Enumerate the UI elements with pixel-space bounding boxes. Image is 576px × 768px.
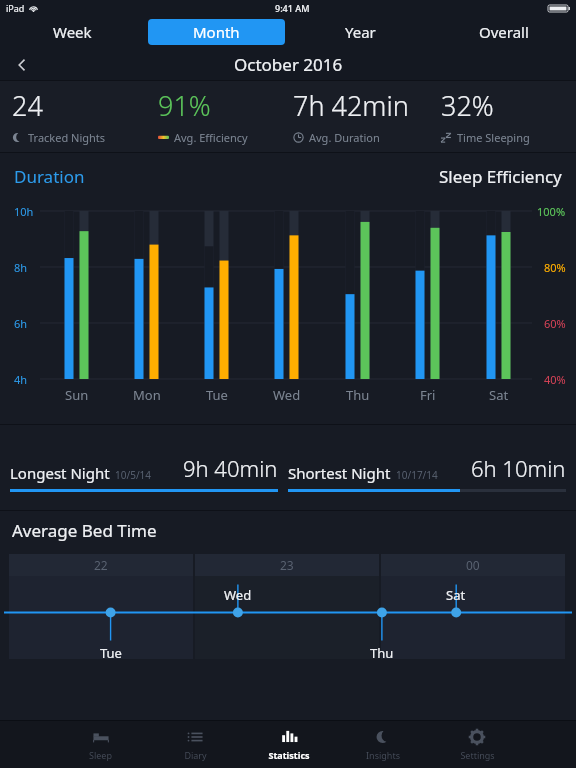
staticText: 00: [466, 557, 480, 573]
staticText: 10/5/14: [115, 468, 152, 482]
button[interactable]: 32%: [441, 87, 576, 153]
button[interactable]: 91%: [158, 87, 293, 153]
button[interactable]: Shortest Night: [288, 453, 566, 492]
staticText: 8h: [14, 260, 28, 275]
staticText: Diary: [184, 749, 207, 761]
staticText: Sun: [65, 386, 89, 404]
staticText: Wed: [224, 586, 252, 604]
staticText: Time Sleeping: [457, 130, 530, 145]
staticText: Longest Night: [10, 463, 110, 483]
staticText: Duration: [14, 165, 85, 188]
staticText: 100%: [537, 204, 566, 219]
staticText: Avg. Duration: [309, 130, 380, 145]
staticText: 22: [94, 557, 108, 573]
button[interactable]: Diary: [148, 721, 242, 768]
staticText: Tue: [206, 386, 228, 404]
staticText: Month: [193, 22, 240, 42]
staticText: Tracked Nights: [28, 130, 106, 145]
staticText: Overall: [479, 22, 529, 42]
button[interactable]: Longest Night: [10, 453, 278, 492]
staticText: 10h: [14, 204, 34, 219]
button[interactable]: Previous month: [0, 48, 44, 81]
button[interactable]: Overall: [432, 19, 576, 45]
staticText: Year: [345, 22, 376, 42]
staticText: 4h: [14, 372, 28, 387]
staticText: October 2016: [234, 53, 343, 76]
staticText: 91%: [158, 87, 211, 124]
staticText: 9:41 AM: [275, 2, 310, 14]
staticText: Sleep: [89, 749, 112, 761]
button[interactable]: Sleep: [53, 721, 148, 768]
staticText: Shortest Night: [288, 463, 391, 483]
staticText: Tue: [100, 644, 122, 662]
staticText: Sat: [446, 586, 466, 604]
staticText: 60%: [544, 316, 566, 331]
staticText: Week: [53, 22, 92, 42]
button[interactable]: Month: [148, 19, 285, 45]
staticText: 10/17/14: [396, 468, 438, 482]
button[interactable]: 24: [12, 87, 158, 153]
staticText: 32%: [441, 87, 494, 124]
button[interactable]: Year: [288, 19, 432, 45]
staticText: Wed: [273, 386, 301, 404]
staticText: Settings: [460, 749, 495, 761]
staticText: Mon: [133, 386, 161, 404]
staticText: 40%: [544, 372, 566, 387]
button[interactable]: Insights: [336, 721, 430, 768]
staticText: 23: [280, 557, 294, 573]
button[interactable]: Statistics: [242, 721, 336, 768]
staticText: Sleep Efficiency: [439, 165, 562, 188]
staticText: Avg. Efficiency: [174, 130, 248, 145]
staticText: 24: [12, 87, 43, 124]
staticText: Fri: [420, 386, 436, 404]
staticText: Thu: [370, 644, 394, 662]
staticText: Average Bed Time: [12, 519, 157, 542]
staticText: Sat: [489, 386, 509, 404]
staticText: 6h: [14, 316, 28, 331]
staticText: Thu: [346, 386, 370, 404]
button[interactable]: Settings: [430, 721, 524, 768]
staticText: iPad: [6, 2, 25, 14]
staticText: Statistics: [268, 749, 310, 761]
staticText: 9h 40min: [183, 453, 278, 483]
button[interactable]: 7h 42min: [293, 87, 441, 153]
staticText: Insights: [366, 749, 400, 761]
button[interactable]: Week: [0, 19, 144, 45]
staticText: 80%: [544, 260, 566, 275]
staticText: 6h 10min: [471, 453, 566, 483]
staticText: 7h 42min: [293, 87, 409, 124]
